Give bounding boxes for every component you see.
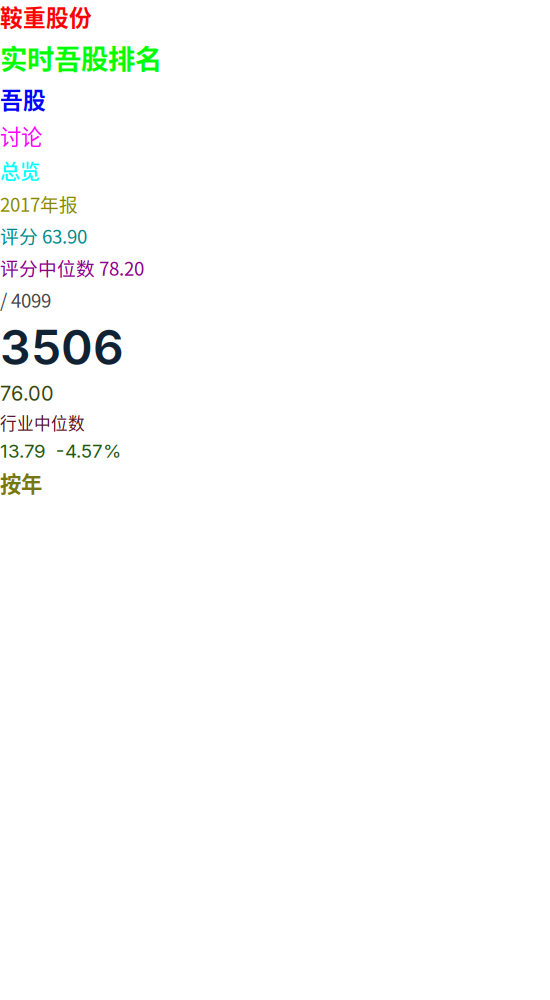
- staticText: 吾股: [0, 82, 46, 115]
- staticText: 行业中位数: [0, 410, 85, 435]
- staticText: / 4099: [0, 286, 51, 313]
- staticText: 讨论: [0, 120, 42, 151]
- staticText: 按年: [0, 467, 42, 498]
- staticText: 2017年报: [0, 190, 78, 217]
- staticText: 3506: [0, 318, 124, 376]
- staticText: 76.00: [0, 381, 54, 405]
- staticText: 总览: [0, 156, 40, 185]
- staticText: 评分 63.90: [0, 222, 87, 249]
- staticText: 评分中位数 78.20: [0, 254, 144, 281]
- staticText: 13.79 -4.57%: [0, 440, 121, 462]
- staticText: 实时吾股排名: [0, 38, 162, 77]
- staticText: 鞍重股份: [0, 0, 92, 33]
